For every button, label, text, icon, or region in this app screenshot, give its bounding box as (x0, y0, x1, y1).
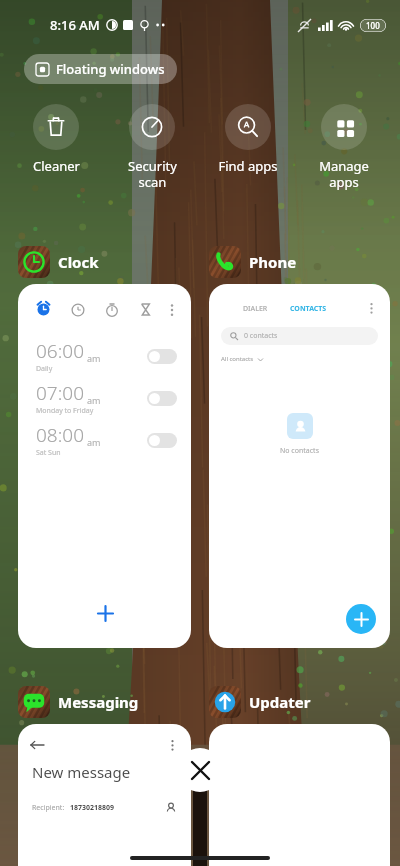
button[interactable]: 06:00 (18, 335, 191, 377)
button[interactable]: More options (166, 739, 179, 752)
staticText: 18730218809 (70, 803, 115, 813)
button[interactable]: Floating windows (24, 54, 177, 84)
staticText: 0 contacts (244, 331, 278, 341)
button[interactable]: Alarm toggle (147, 349, 177, 364)
button[interactable]: Security scan (104, 100, 200, 194)
staticText: Manage apps (319, 157, 369, 190)
staticText: 08:00 (36, 422, 85, 448)
button[interactable]: 07:00 (18, 377, 191, 419)
button[interactable]: DIALER (209, 284, 390, 648)
staticText: Sat Sun (36, 448, 61, 458)
staticText: Monday to Friday (36, 406, 94, 416)
button[interactable]: Manage apps (296, 100, 392, 194)
staticText: Daily (36, 364, 53, 374)
button[interactable]: More options (18, 284, 191, 648)
staticText: Security scan (128, 157, 177, 190)
button[interactable]: Alarm toggle (147, 391, 177, 406)
staticText: Recipient: (32, 803, 65, 813)
button[interactable]: Add contact (346, 604, 376, 634)
staticText: 06:00 (36, 338, 85, 364)
staticText: 100 (366, 20, 380, 31)
staticText: All contacts (221, 355, 254, 363)
staticText: Floating windows (56, 60, 165, 78)
button[interactable]: Close all (178, 748, 222, 792)
button[interactable]: Choose contact (165, 802, 177, 814)
staticText: No contacts (280, 446, 319, 456)
staticText: Phone (249, 252, 297, 272)
button[interactable]: 0 contacts (221, 327, 378, 345)
staticText: am (87, 394, 101, 406)
staticText: Cleaner (33, 157, 80, 175)
staticText: CONTACTS (290, 304, 327, 314)
staticText: New message (32, 762, 131, 782)
button[interactable]: Cleaner (8, 100, 104, 179)
staticText: Clock (58, 252, 99, 272)
button[interactable]: Back (30, 738, 44, 752)
button[interactable]: Alarm toggle (147, 433, 177, 448)
button[interactable]: More options (165, 303, 179, 317)
staticText: 8:16 AM (50, 16, 100, 34)
staticText: Find apps (218, 157, 278, 175)
button[interactable]: Add alarm (88, 596, 122, 630)
button[interactable]: More options (365, 302, 378, 315)
button[interactable]: Find apps (200, 100, 296, 179)
staticText: 07:00 (36, 380, 85, 406)
staticText: Updater (249, 692, 311, 712)
button[interactable] (209, 724, 390, 866)
staticText: am (87, 436, 101, 448)
staticText: am (87, 352, 101, 364)
button[interactable]: 08:00 (18, 419, 191, 461)
staticText: Messaging (58, 692, 139, 712)
staticText: DIALER (243, 304, 268, 314)
button[interactable]: Back (18, 724, 191, 866)
